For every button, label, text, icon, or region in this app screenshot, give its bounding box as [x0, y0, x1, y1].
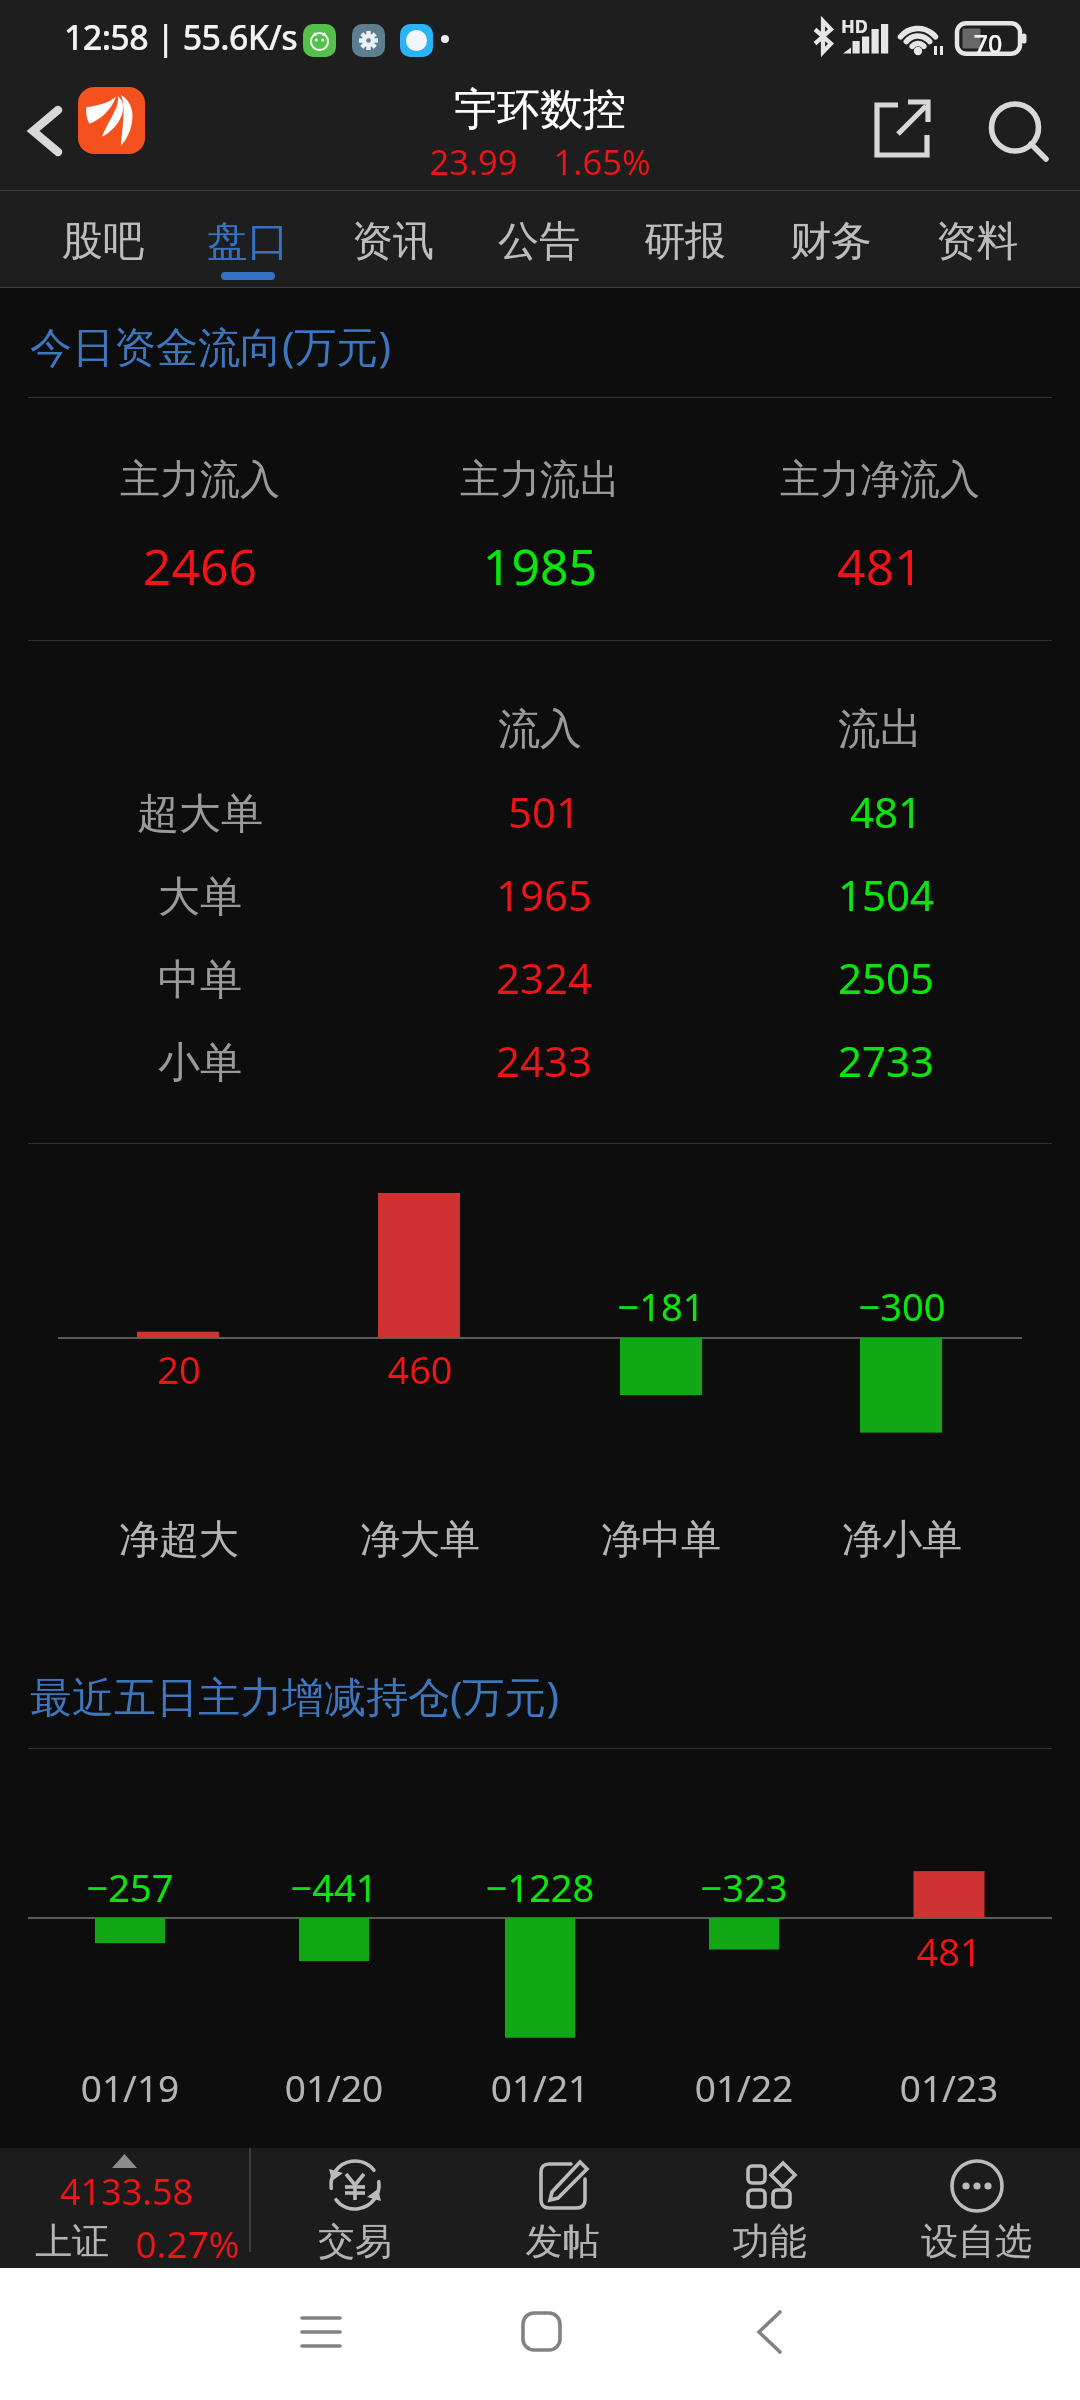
staticText: 研报 — [644, 216, 726, 268]
staticText: 481 — [686, 783, 1080, 840]
staticText: 20 — [0, 1343, 379, 1395]
staticText: 净中单 — [461, 1514, 861, 1564]
staticText: 23.99 — [429, 138, 518, 185]
staticText: 501 — [344, 783, 744, 840]
staticText: −300 — [702, 1280, 1080, 1332]
staticText: 2433 — [344, 1032, 744, 1089]
staticText: −441 — [134, 1861, 534, 1913]
staticText: 481 — [680, 532, 1080, 600]
staticText: 01/23 — [749, 2062, 1080, 2112]
staticText: 资料 — [936, 216, 1018, 268]
staticText: HD — [841, 14, 868, 39]
staticText: 01/21 — [340, 2062, 740, 2112]
staticText: 1985 — [340, 532, 740, 600]
staticText: 12:58 | 55.6K/s — [64, 14, 298, 60]
staticText: 2733 — [686, 1032, 1080, 1089]
staticText: 01/19 — [0, 2062, 330, 2112]
staticText: 1965 — [344, 866, 744, 923]
button[interactable]: 发帖 — [459, 2148, 666, 2268]
button[interactable]: Search — [973, 89, 1061, 177]
staticText: 公告 — [498, 216, 580, 268]
staticText: 超大单 — [0, 788, 400, 841]
button[interactable]: 上证指数 — [0, 2148, 249, 2268]
staticText: 宇环数控 — [454, 83, 626, 137]
button[interactable]: Recent apps — [256, 2268, 384, 2400]
staticText: 最近五日主力增减持仓(万元) — [30, 1667, 560, 1724]
staticText: 460 — [220, 1343, 620, 1395]
staticText: −323 — [544, 1861, 944, 1913]
staticText: 主力流入 — [0, 454, 400, 504]
button[interactable]: Back — [706, 2268, 834, 2400]
staticText: 481 — [749, 1925, 1080, 1977]
staticText: 大单 — [0, 871, 400, 924]
staticText: 盘口 — [207, 216, 289, 268]
staticText: 流入 — [340, 703, 740, 756]
staticText: 功能 — [666, 2218, 873, 2265]
staticText: 小单 — [0, 1037, 400, 1090]
button[interactable]: 功能 — [666, 2148, 873, 2268]
staticText: 0.27% — [135, 2218, 240, 2268]
button[interactable]: 股吧 — [30, 191, 175, 288]
staticText: 资讯 — [352, 216, 434, 268]
staticText: 净小单 — [702, 1514, 1080, 1564]
staticText: 1.65% — [553, 138, 651, 185]
button[interactable]: Back — [7, 91, 89, 173]
staticText: 交易 — [251, 2218, 459, 2265]
staticText: 发帖 — [459, 2218, 666, 2265]
staticText: −181 — [461, 1280, 861, 1332]
staticText: 今日资金流向(万元) — [30, 317, 392, 374]
button[interactable]: 交易 — [251, 2148, 459, 2268]
staticText: 中单 — [0, 954, 400, 1007]
button[interactable]: 盘口 — [175, 191, 320, 288]
staticText: 1504 — [686, 866, 1080, 923]
staticText: 4133.58 — [2, 2167, 251, 2216]
staticText: 股吧 — [62, 216, 144, 268]
staticText: 主力流出 — [340, 454, 740, 504]
button[interactable]: 资料 — [904, 191, 1050, 288]
staticText: 2466 — [0, 532, 400, 600]
staticText: −1228 — [340, 1861, 740, 1913]
button[interactable]: 资讯 — [320, 191, 466, 288]
staticText: 2505 — [686, 949, 1080, 1006]
staticText: 01/20 — [134, 2062, 534, 2112]
staticText: 设自选 — [873, 2218, 1080, 2265]
staticText: 70 — [963, 26, 1013, 60]
staticText: 财务 — [790, 216, 872, 268]
button[interactable]: Home — [477, 2268, 605, 2400]
button[interactable]: 研报 — [612, 191, 758, 288]
staticText: 净超大 — [0, 1514, 379, 1564]
staticText: −257 — [0, 1861, 330, 1913]
staticText: 净大单 — [220, 1514, 620, 1564]
staticText: 上证 — [35, 2218, 109, 2265]
staticText: 2324 — [344, 949, 744, 1006]
staticText: 01/22 — [544, 2062, 944, 2112]
staticText: 流出 — [680, 703, 1080, 756]
button[interactable]: Share — [860, 91, 944, 175]
button[interactable]: 财务 — [758, 191, 904, 288]
button[interactable]: App home — [78, 87, 145, 154]
button[interactable]: 公告 — [466, 191, 612, 288]
button[interactable]: 设自选 — [873, 2148, 1080, 2268]
staticText: 主力净流入 — [680, 454, 1080, 504]
